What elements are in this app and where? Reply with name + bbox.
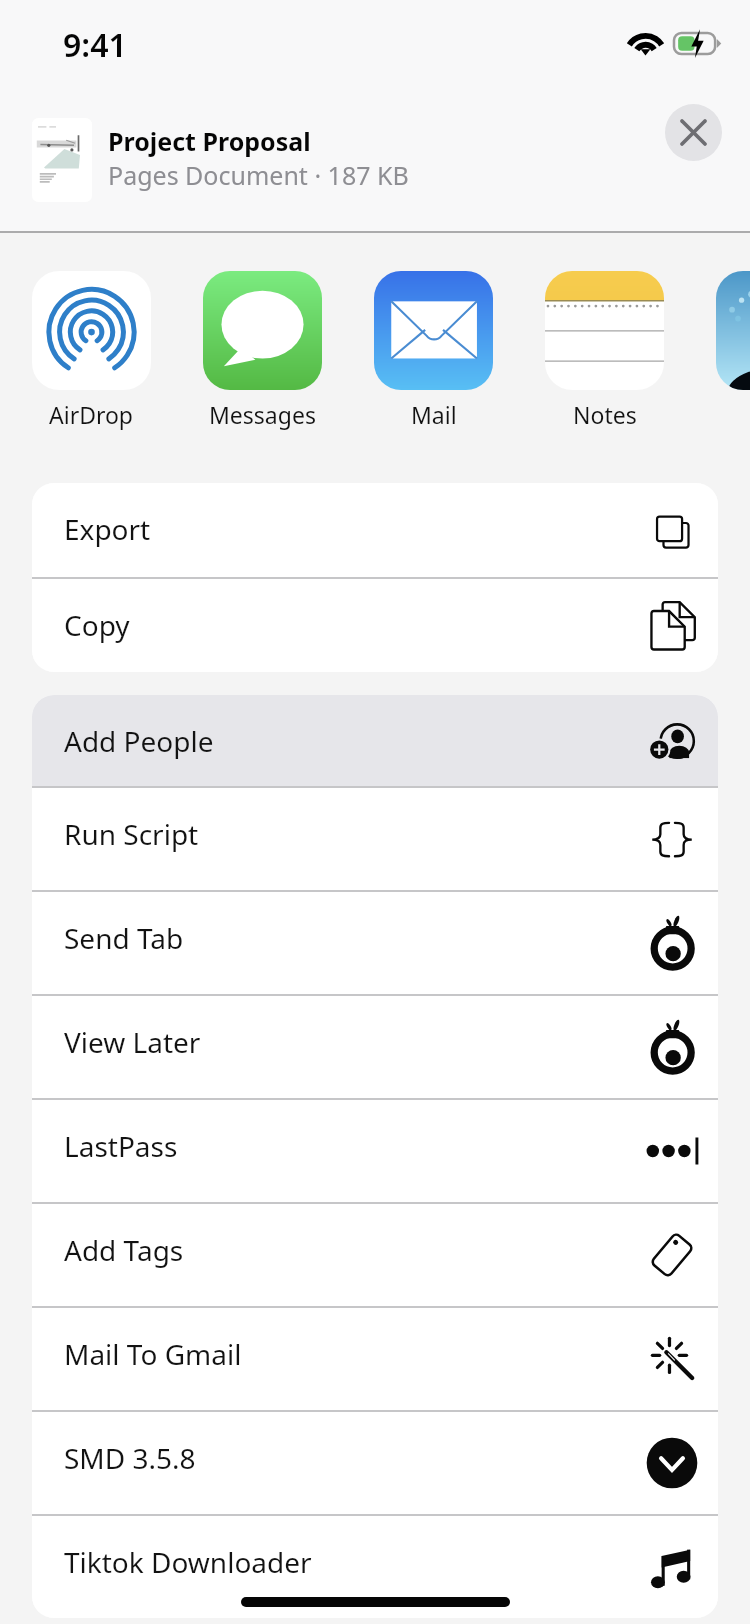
staticText: Add People: [64, 722, 214, 760]
button[interactable]: Close: [665, 104, 722, 161]
staticText: AirDrop: [49, 399, 134, 430]
staticText: Add Tags: [64, 1231, 184, 1269]
staticText: Messages: [209, 399, 316, 430]
staticText: Copy: [64, 606, 130, 644]
button[interactable]: Send Tab: [32, 892, 718, 994]
button[interactable]: Add Tags: [32, 1204, 718, 1306]
button[interactable]: View Later: [32, 996, 718, 1098]
button[interactable]: Export: [32, 483, 718, 577]
staticText: Run Script: [64, 815, 199, 853]
staticText: Project Proposal: [108, 124, 311, 158]
button[interactable]: Tiktok Downloader: [32, 1516, 718, 1618]
button[interactable]: Ha: [716, 271, 750, 430]
staticText: Mail: [411, 399, 457, 430]
button[interactable]: Notes: [545, 271, 664, 430]
staticText: SMD 3.5.8: [64, 1439, 196, 1477]
staticText: Export: [64, 510, 151, 548]
staticText: Pages Document · 187 KB: [108, 158, 409, 192]
staticText: Mail To Gmail: [64, 1335, 242, 1373]
button[interactable]: Copy: [32, 579, 718, 672]
button[interactable]: Run Script: [32, 788, 718, 890]
staticText: 9:41: [63, 23, 127, 67]
staticText: LastPass: [64, 1127, 178, 1165]
staticText: Notes: [573, 399, 637, 430]
staticText: View Later: [64, 1023, 201, 1061]
button[interactable]: LastPass: [32, 1100, 718, 1202]
staticText: Send Tab: [64, 919, 184, 957]
button[interactable]: Mail: [374, 271, 493, 430]
button[interactable]: SMD 3.5.8: [32, 1412, 718, 1514]
button[interactable]: Mail To Gmail: [32, 1308, 718, 1410]
staticText: Tiktok Downloader: [64, 1543, 312, 1581]
button[interactable]: AirDrop: [32, 271, 151, 430]
button[interactable]: Messages: [203, 271, 322, 430]
button[interactable]: Add People: [32, 695, 718, 786]
